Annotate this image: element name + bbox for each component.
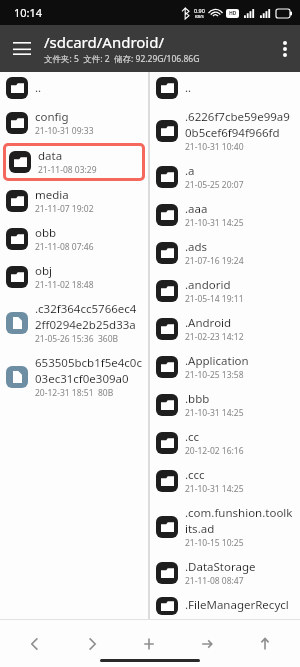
staticText: .. xyxy=(35,80,42,96)
staticText: 21-11-02 18:48 xyxy=(35,279,94,291)
staticText: 21-10-15 10:25 xyxy=(185,537,244,549)
staticText: .bbb xyxy=(185,391,210,407)
button[interactable]: Up xyxy=(236,620,294,667)
button[interactable]: config xyxy=(0,104,148,142)
staticText: .aaa xyxy=(185,201,208,217)
staticText: 21-07-16 19:24 xyxy=(185,255,244,267)
button[interactable]: .c32f364cc5766ec42ff0294e2b25d33a xyxy=(0,296,148,350)
button[interactable]: .andorid xyxy=(150,272,300,310)
staticText: .ccc xyxy=(185,467,205,483)
staticText: 20-12-02 16:16 xyxy=(185,445,244,457)
staticText: .cc xyxy=(185,429,200,445)
button[interactable]: .ads xyxy=(150,234,300,272)
button[interactable]: Paste xyxy=(178,620,236,667)
staticText: 21-10-31 14:25 xyxy=(185,407,244,419)
staticText: .com.funshion.toolkits.ad xyxy=(185,505,294,537)
staticText: HD xyxy=(229,10,237,17)
staticText: .a xyxy=(185,163,195,179)
staticText: 21-05-25 20:07 xyxy=(185,179,244,191)
button[interactable]: .aaa xyxy=(150,196,300,234)
staticText: config xyxy=(35,109,69,125)
staticText: obb xyxy=(35,225,57,241)
staticText: .FileManagerRecycler xyxy=(185,597,294,615)
button[interactable]: .. xyxy=(0,72,148,104)
staticText: 21-10-31 14:25 xyxy=(185,217,244,229)
staticText: .Application xyxy=(185,353,249,369)
button[interactable]: .. xyxy=(150,72,300,104)
staticText: 21-11-08 03:29 xyxy=(38,164,97,176)
staticText: 21-10-25 13:58 xyxy=(185,369,244,381)
staticText: obj xyxy=(35,263,52,279)
button[interactable]: .Android xyxy=(150,310,300,348)
button[interactable]: .FileManagerRecycler xyxy=(150,592,300,620)
staticText: .. xyxy=(185,80,192,96)
staticText: 653505bcb1f5e4c0c03ec31cf0e309a0 xyxy=(35,355,142,387)
staticText: 21-11-08 08:47 xyxy=(185,575,244,587)
button[interactable]: New xyxy=(120,620,178,667)
staticText: .DataStorage xyxy=(185,559,256,575)
staticText: .6226f7cbe59e99a90b5cef6f94f966fd xyxy=(185,109,294,141)
staticText: /sdcard/Android/ xyxy=(44,32,165,52)
button[interactable]: media xyxy=(0,182,148,220)
staticText: media xyxy=(35,187,69,203)
staticText: .Android xyxy=(185,315,232,331)
button[interactable]: obj xyxy=(0,258,148,296)
staticText: 10:14 xyxy=(14,5,43,20)
button[interactable]: obb xyxy=(0,220,148,258)
staticText: 21-11-08 07:46 xyxy=(35,241,94,253)
staticText: 21-05-14 19:11 xyxy=(185,293,244,305)
button[interactable]: 653505bcb1f5e4c0c03ec31cf0e309a0 xyxy=(0,350,148,404)
button[interactable]: data xyxy=(3,143,145,181)
button[interactable]: Forward xyxy=(63,620,120,667)
button[interactable]: .com.funshion.toolkits.ad xyxy=(150,500,300,554)
staticText: 21-05-26 15:36 360B xyxy=(35,333,119,345)
staticText: 21-10-31 10:40 xyxy=(185,141,244,153)
button[interactable]: .a xyxy=(150,158,300,196)
staticText: .ads xyxy=(185,239,208,255)
staticText: 0.90 xyxy=(194,7,205,14)
staticText: 21-02-23 14:12 xyxy=(185,331,244,343)
staticText: .c32f364cc5766ec42ff0294e2b25d33a xyxy=(35,301,142,333)
staticText: .andorid xyxy=(185,277,231,293)
button[interactable]: Menu xyxy=(0,25,44,72)
staticText: 21-11-07 19:02 xyxy=(35,203,94,215)
staticText: 21-10-31 09:33 xyxy=(35,125,94,137)
button[interactable]: .bbb xyxy=(150,386,300,424)
staticText: 21-10-31 14:25 xyxy=(185,483,244,495)
button[interactable]: .6226f7cbe59e99a90b5cef6f94f966fd xyxy=(150,104,300,158)
staticText: 20-12-31 18:51 80B xyxy=(35,387,114,399)
button[interactable]: More options xyxy=(270,25,300,72)
button[interactable]: .Application xyxy=(150,348,300,386)
button[interactable]: .ccc xyxy=(150,462,300,500)
button[interactable]: .DataStorage xyxy=(150,554,300,592)
staticText: data xyxy=(38,148,63,164)
button[interactable]: .cc xyxy=(150,424,300,462)
staticText: 文件夹: 5 文件: 2 储存: 92.29G/106.86G xyxy=(44,53,200,65)
button[interactable]: Back xyxy=(6,620,63,667)
staticText: KB/S xyxy=(195,14,204,19)
